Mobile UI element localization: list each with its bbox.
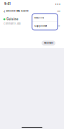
staticText: Modifier: [34, 16, 44, 19]
staticText: ▪▪▪: [55, 2, 61, 5]
staticText: •••: [57, 10, 60, 12]
staticText: Community Jobs: [3, 22, 20, 25]
staticText: ‹: [3, 8, 5, 13]
button[interactable]: ‹: [3, 8, 28, 13]
staticText: Rejoindre: [44, 42, 53, 44]
staticText: Membre: [52, 25, 60, 27]
staticText: Supprimer: [34, 24, 47, 27]
staticText: Cuisine: [7, 17, 19, 21]
staticText: 9:41: [4, 2, 10, 6]
button[interactable]: More options: [57, 9, 61, 13]
button[interactable]: Modifier: [32, 14, 58, 22]
staticText: Online Test Store: [6, 9, 28, 12]
button[interactable]: Supprimer: [32, 22, 58, 30]
button[interactable]: Rejoindre: [41, 41, 55, 45]
